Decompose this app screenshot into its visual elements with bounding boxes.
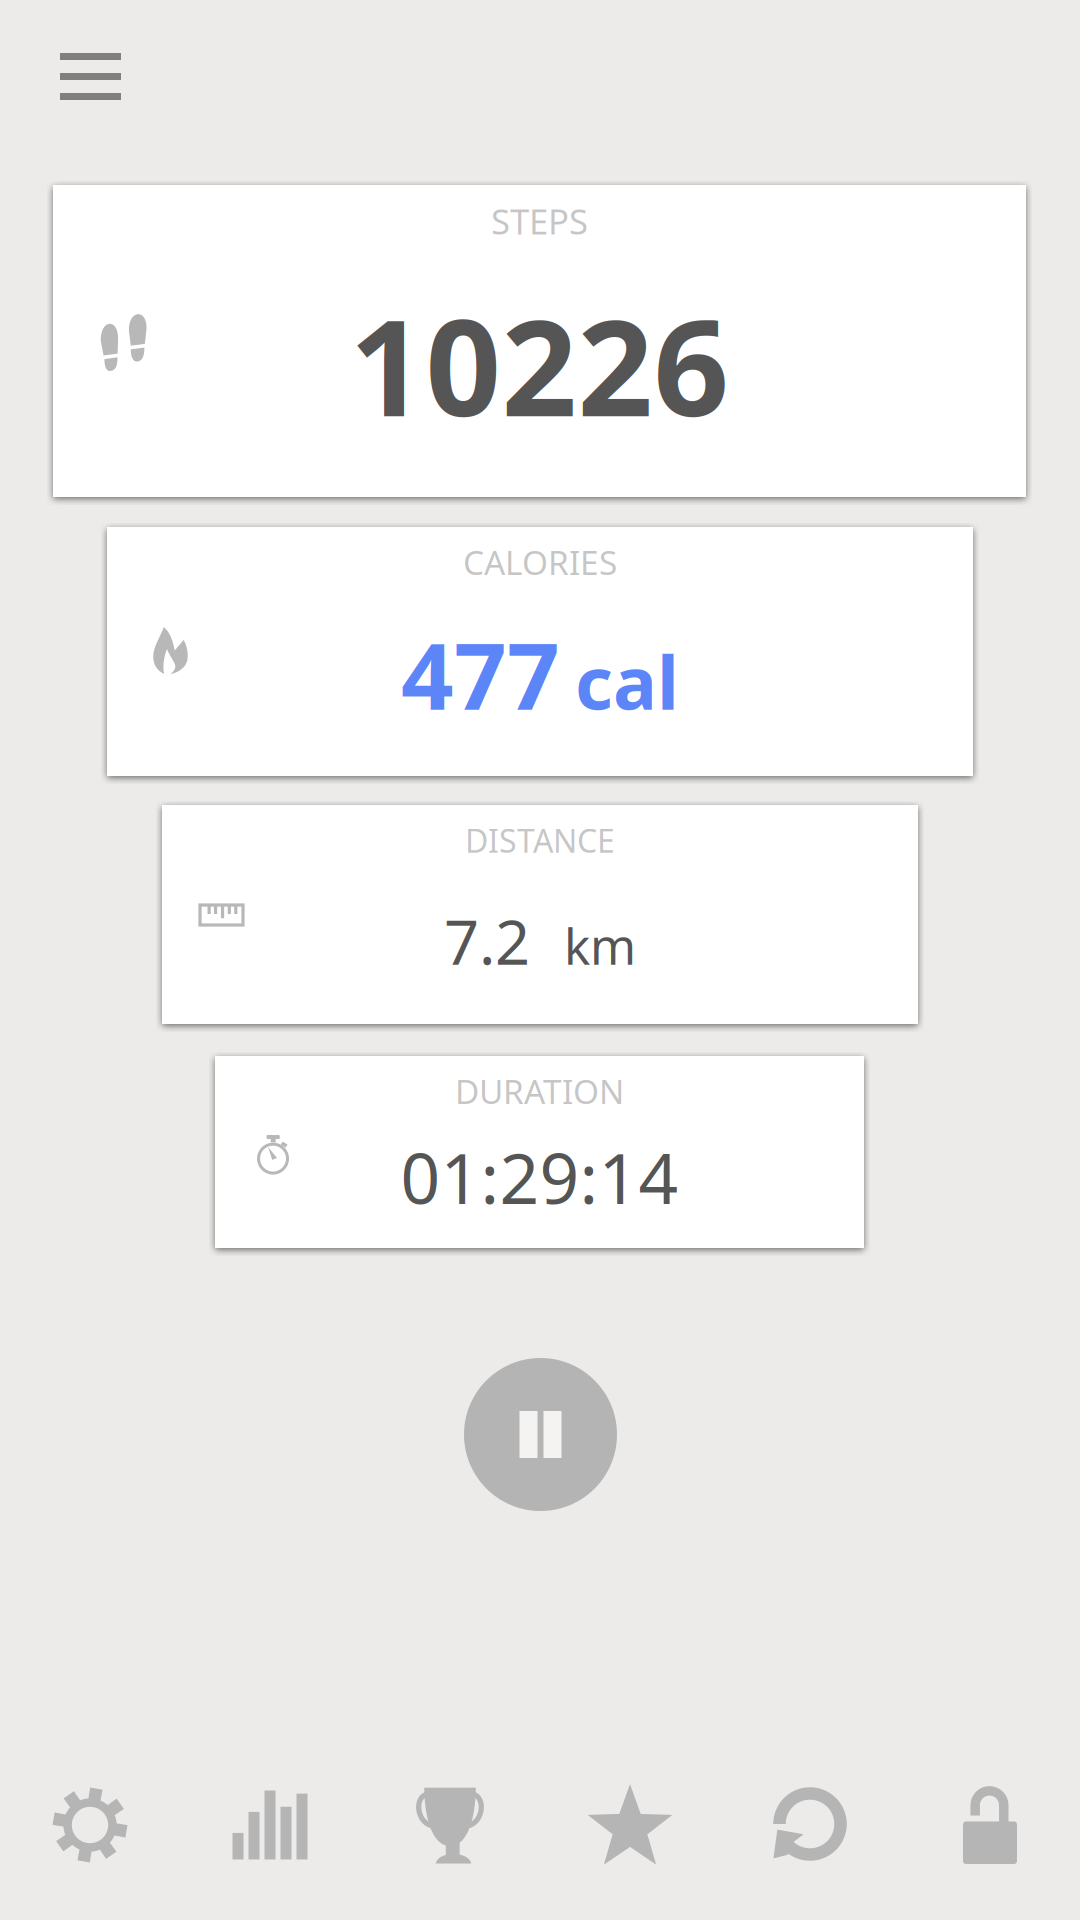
button[interactable]: Settings: [0, 1752, 180, 1902]
staticText: CALORIES: [463, 540, 617, 584]
staticText: 477: [401, 613, 560, 735]
button[interactable]: Lock: [900, 1752, 1080, 1902]
button[interactable]: Achievements: [360, 1752, 540, 1902]
button[interactable]: Menu: [0, 0, 165, 144]
staticText: DURATION: [455, 1069, 624, 1113]
button[interactable]: Reset: [720, 1752, 900, 1902]
button[interactable]: Goals: [540, 1752, 720, 1902]
staticText: 10226: [349, 277, 729, 453]
button[interactable]: Statistics: [180, 1752, 360, 1902]
staticText: cal: [575, 633, 679, 730]
staticText: 01:29:14: [400, 1131, 678, 1223]
staticText: km: [564, 913, 636, 978]
staticText: 7.2: [444, 900, 530, 982]
staticText: DISTANCE: [465, 819, 615, 861]
staticText: STEPS: [491, 198, 588, 244]
button[interactable]: Pause: [464, 1358, 617, 1511]
